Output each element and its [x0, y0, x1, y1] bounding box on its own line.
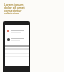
staticText: Lorem ipsum dolor sit amet consectetur a…: [4, 3, 30, 14]
button[interactable]: [5, 29, 29, 33]
button[interactable]: [5, 37, 29, 41]
